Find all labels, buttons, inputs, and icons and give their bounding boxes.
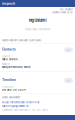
staticText: Tabu cobbo [2,58,18,61]
staticText: Please check information [25,28,50,31]
staticText: No. 29-8841 [60,8,73,11]
staticText: Generated automatically - do not reply [2,108,48,111]
staticText: Issued 12 Mar 2024 [52,11,73,14]
button[interactable]: Copy Timeline [64,78,73,83]
staticText: inspectr [2,2,15,5]
staticText: Completed [2,86,13,88]
staticText: Supplier [2,63,10,65]
button[interactable]: support@ingizkumi.co [2,105,29,108]
staticText: Ingizkumi [28,18,46,23]
staticText: Read the terms and conditions [2,101,39,104]
button[interactable]: Read the terms and conditions [2,101,39,104]
staticText: support@ingizkumi.co [2,105,29,108]
button[interactable]: Copy Contacts [64,47,73,52]
staticText: Mirqjbe wiinbu wors [2,65,30,69]
staticText: Oct and 28 2024 [2,88,26,91]
staticText: Location [2,55,10,58]
staticText: « [67,79,69,82]
staticText: « [67,48,69,51]
staticText: Need assistance? [2,96,20,99]
staticText: Contacts [2,47,16,51]
staticText: Timeline [2,78,16,82]
staticText: Memorandum data and particulars [2,39,41,42]
